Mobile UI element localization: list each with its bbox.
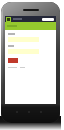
button[interactable]: Address bar [42, 18, 54, 21]
button[interactable]: Site logo [6, 17, 11, 22]
